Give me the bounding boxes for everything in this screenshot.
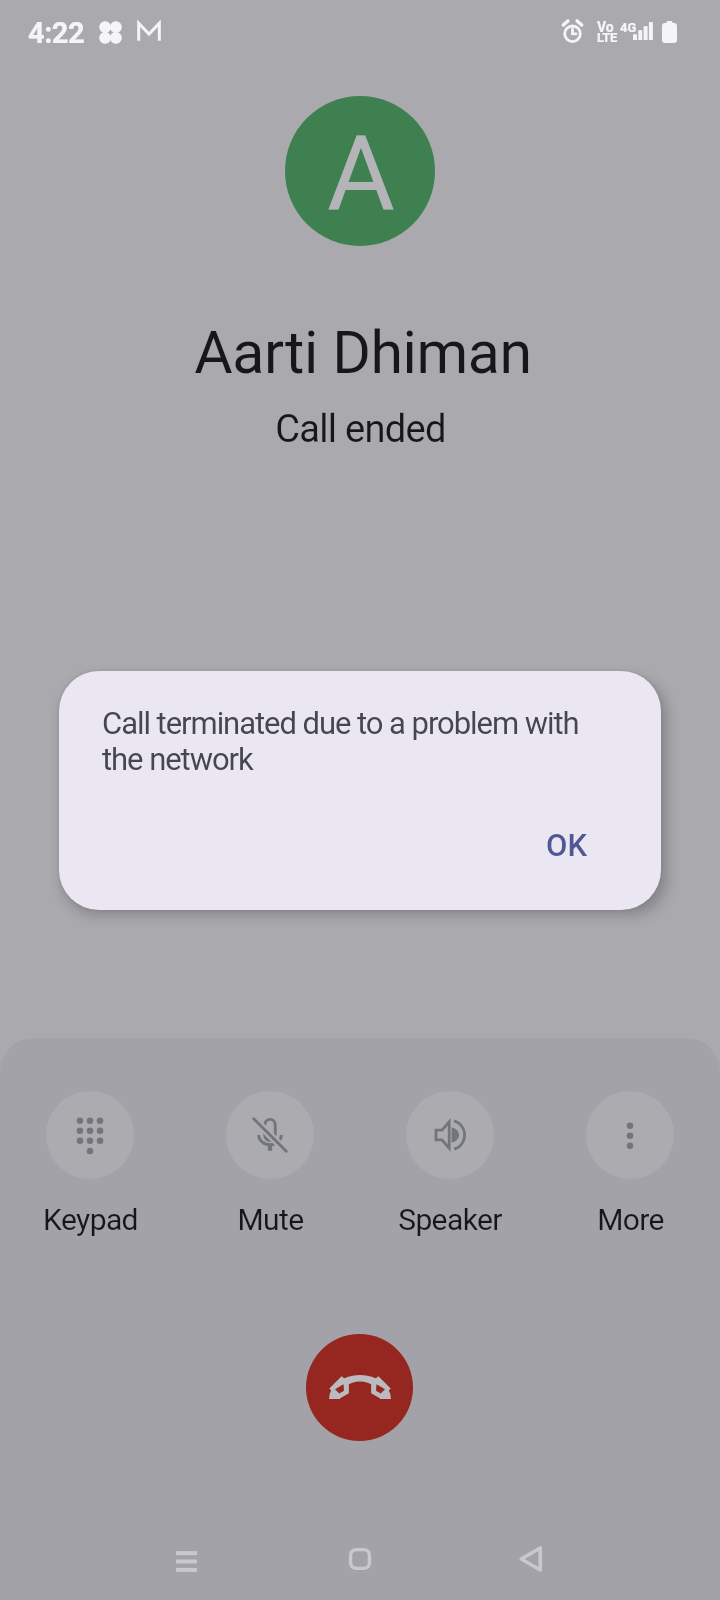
staticText: 4G: [620, 20, 637, 35]
staticText: Mute: [237, 1202, 304, 1237]
button[interactable]: Home: [320, 1519, 400, 1599]
button[interactable]: Back: [491, 1519, 571, 1599]
button[interactable]: Mute: [190, 1091, 350, 1237]
button[interactable]: More: [550, 1091, 710, 1237]
staticText: Aarti Dhiman: [194, 318, 532, 387]
staticText: OK: [546, 827, 587, 863]
staticText: Vo: [597, 19, 614, 35]
staticText: Speaker: [398, 1202, 502, 1237]
staticText: More: [597, 1202, 664, 1237]
staticText: 4:22: [28, 16, 85, 50]
staticText: Call ended: [275, 407, 446, 452]
button[interactable]: OK: [530, 815, 603, 875]
button[interactable]: Keypad: [10, 1091, 170, 1237]
button[interactable]: Speaker: [370, 1091, 530, 1237]
button[interactable]: Recent apps: [146, 1519, 226, 1599]
staticText: A: [327, 113, 395, 235]
button[interactable]: End call: [306, 1334, 413, 1441]
staticText: LTE: [597, 30, 617, 45]
staticText: Call terminated due to a problem with th…: [102, 705, 602, 777]
staticText: Keypad: [43, 1202, 138, 1237]
